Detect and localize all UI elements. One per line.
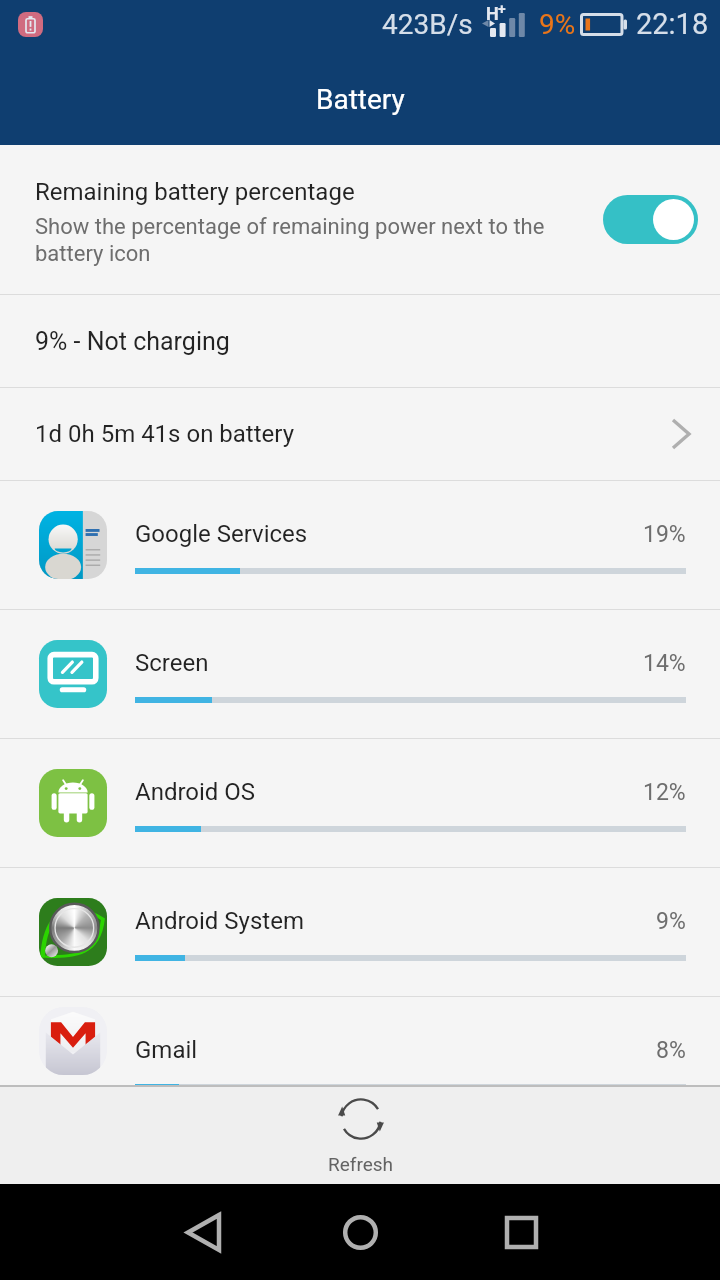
staticText: 9%	[656, 908, 686, 935]
other: Details	[673, 420, 689, 448]
staticText: Battery	[316, 83, 405, 116]
staticText: Android OS	[135, 778, 643, 806]
staticText: Android System	[135, 907, 656, 935]
staticText: 8%	[656, 1037, 686, 1064]
staticText: 19%	[643, 521, 686, 548]
button[interactable]: Gmail	[0, 997, 720, 1085]
staticText: 12%	[643, 779, 686, 806]
button[interactable]: Android OS	[0, 739, 720, 867]
staticText: H	[486, 3, 499, 24]
staticText: 14%	[643, 650, 686, 677]
staticText: Gmail	[135, 1036, 656, 1064]
staticText: 423B/s	[382, 8, 473, 41]
button[interactable]: Remaining battery percentage	[0, 145, 720, 294]
staticText: 22:18	[636, 7, 709, 41]
staticText: 9%	[539, 8, 576, 41]
staticText: Refresh	[328, 1153, 393, 1175]
staticText: Google Services	[135, 520, 643, 548]
staticText: 1d 0h 5m 41s on battery	[35, 420, 294, 448]
staticText: Screen	[135, 649, 643, 677]
button[interactable]: Refresh	[0, 1087, 720, 1184]
button[interactable]: Recent apps	[489, 1200, 553, 1264]
button[interactable]: Screen	[0, 610, 720, 738]
button[interactable]: Back	[171, 1200, 235, 1264]
button[interactable]: 1d 0h 5m 41s on battery	[0, 388, 720, 480]
button[interactable]: 9% - Not charging	[0, 295, 720, 387]
button[interactable]: Google Services	[0, 481, 720, 609]
staticText: Remaining battery percentage	[35, 178, 355, 206]
staticText: Show the percentage of remaining power n…	[35, 214, 589, 266]
button[interactable]: Android System	[0, 868, 720, 996]
staticText: 9% - Not charging	[35, 327, 230, 356]
staticText: +	[498, 1, 506, 17]
button[interactable]: Home	[328, 1200, 392, 1264]
button[interactable]: Remaining battery percentage toggle, on	[603, 195, 698, 244]
